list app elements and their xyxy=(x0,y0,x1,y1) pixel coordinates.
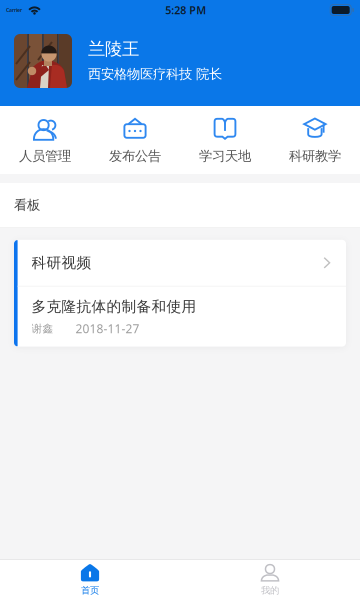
staticText: 看板 xyxy=(14,197,40,213)
staticText: 科研教学 xyxy=(289,148,341,164)
staticText: 我的 xyxy=(261,585,279,596)
staticText: 兰陵王 xyxy=(88,38,139,60)
staticText: 西安格物医疗科技 院长 xyxy=(88,66,222,82)
staticText: 发布公告 xyxy=(109,148,161,164)
staticText: 人员管理 xyxy=(19,148,71,164)
button[interactable]: 我的 xyxy=(180,560,360,600)
staticText: 多克隆抗体的制备和使用 xyxy=(32,298,197,316)
staticText: 5:28 PM xyxy=(165,3,206,17)
staticText: 2018-11-27 xyxy=(76,321,140,336)
staticText: 谢鑫 xyxy=(32,322,54,335)
staticText: Carrier xyxy=(6,6,22,14)
button[interactable]: 学习天地 xyxy=(180,104,270,175)
staticText: 首页 xyxy=(81,585,99,596)
staticText: 学习天地 xyxy=(199,148,251,164)
button[interactable]: 人员管理 xyxy=(0,104,90,175)
button[interactable]: 首页 xyxy=(0,560,180,600)
button[interactable]: 科研视频 xyxy=(0,240,360,347)
staticText: 科研视频 xyxy=(32,254,92,272)
button[interactable]: 科研教学 xyxy=(270,104,360,175)
button[interactable]: 发布公告 xyxy=(90,104,180,175)
